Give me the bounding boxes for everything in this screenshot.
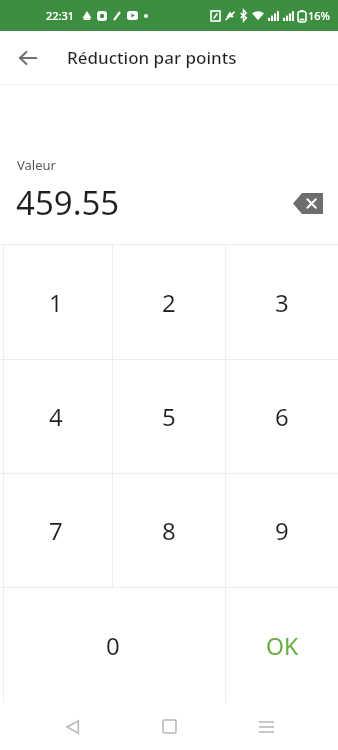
button[interactable]: Back — [10, 40, 46, 76]
staticText: 459.55 — [16, 180, 120, 225]
button[interactable]: 6 — [226, 360, 338, 473]
staticText: Valeur — [17, 156, 56, 174]
staticText: 3 — [275, 286, 289, 319]
staticText: 0 — [106, 629, 120, 662]
staticText: 7 — [49, 514, 63, 547]
staticText: 16% — [308, 8, 330, 23]
button[interactable]: 4 — [0, 360, 112, 473]
staticText: 22:31 — [46, 8, 75, 23]
staticText: 4 — [49, 400, 63, 433]
staticText: 5 — [162, 400, 176, 433]
button[interactable]: Backspace — [288, 183, 328, 223]
staticText: Réduction par points — [67, 46, 237, 69]
button[interactable]: Home — [145, 703, 193, 750]
button[interactable]: 7 — [0, 474, 112, 587]
button[interactable]: 1 — [0, 245, 112, 359]
button[interactable]: Back — [49, 703, 97, 750]
staticText: 6 — [275, 400, 289, 433]
button[interactable]: OK — [226, 588, 338, 703]
button[interactable]: 3 — [226, 245, 338, 359]
button[interactable]: 0 — [0, 588, 225, 703]
staticText: 2 — [162, 286, 176, 319]
button[interactable]: 5 — [113, 360, 225, 473]
staticText: 9 — [275, 514, 289, 547]
button[interactable]: 9 — [226, 474, 338, 587]
button[interactable]: 8 — [113, 474, 225, 587]
button[interactable]: 2 — [113, 245, 225, 359]
staticText: 1 — [49, 286, 63, 319]
staticText: 8 — [162, 514, 176, 547]
button[interactable]: Recent apps — [242, 703, 290, 750]
staticText: OK — [266, 630, 299, 661]
